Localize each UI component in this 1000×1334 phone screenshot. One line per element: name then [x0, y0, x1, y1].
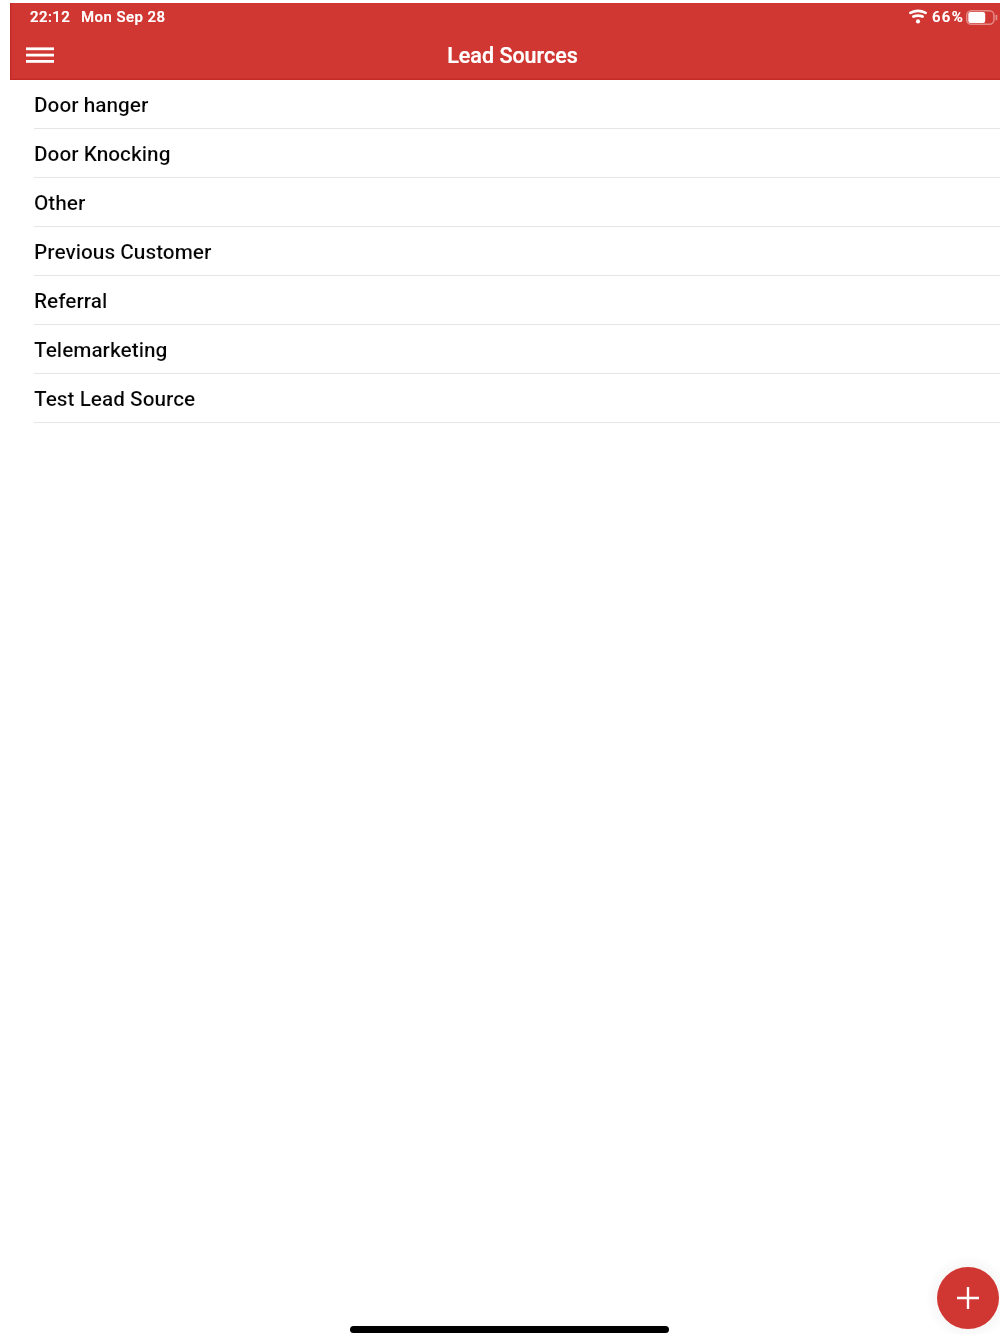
button[interactable]: Menu [16, 31, 64, 79]
staticText: Door Knocking [34, 142, 171, 166]
staticText: Referral [34, 289, 108, 313]
staticText: Test Lead Source [34, 387, 196, 411]
staticText: Previous Customer [34, 240, 212, 264]
button[interactable]: Test Lead Source [0, 374, 1000, 423]
button[interactable]: Door hanger [0, 80, 1000, 129]
button[interactable]: Telemarketing [0, 325, 1000, 374]
button[interactable]: Other [0, 178, 1000, 227]
button[interactable]: Previous Customer [0, 227, 1000, 276]
staticText: Telemarketing [34, 338, 168, 362]
staticText: Door hanger [34, 93, 149, 117]
button[interactable]: Add [937, 1267, 999, 1329]
staticText: 22:12 [30, 8, 71, 26]
staticText: Mon Sep 28 [81, 8, 166, 26]
button[interactable]: Door Knocking [0, 129, 1000, 178]
staticText: Other [34, 191, 86, 215]
button[interactable]: Referral [0, 276, 1000, 325]
staticText: Lead Sources [447, 43, 578, 68]
staticText: 66% [932, 8, 964, 26]
